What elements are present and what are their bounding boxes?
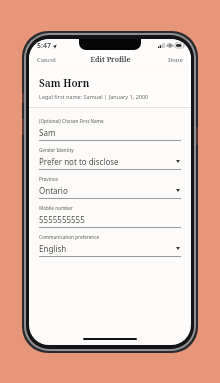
staticText: Sam [39,127,181,138]
button[interactable]: Gender Identity [29,144,191,173]
other: Open Communication preference picker [174,245,181,252]
staticText: Legal first name: Samuel | January 1, 20… [39,93,149,100]
button[interactable]: Province [29,173,191,202]
staticText: Province [39,176,58,182]
other: Open Province picker [174,187,181,194]
staticText: Sam Horn [39,76,90,90]
staticText: 5:47 [37,41,51,51]
staticText: 5555555555 [39,214,181,225]
staticText: Communication preference [39,234,100,240]
staticText: Cancel [37,56,56,64]
staticText: English [39,243,174,254]
staticText: (Optional) Chosen First Name [39,118,104,124]
staticText: Gender Identity [39,147,74,153]
staticText: Prefer not to disclose [39,156,174,167]
staticText: Done [168,56,183,64]
button[interactable]: Done [160,53,191,67]
other: Open Gender Identity picker [174,158,181,165]
staticText: Edit Profile [90,55,131,65]
button[interactable]: (Optional) Chosen First Name [29,115,191,144]
staticText: Mobile number [39,205,73,211]
button[interactable]: Communication preference [29,231,191,260]
staticText: Ontario [39,185,174,196]
button[interactable]: Mobile number [29,202,191,231]
button[interactable]: Cancel [29,53,64,67]
